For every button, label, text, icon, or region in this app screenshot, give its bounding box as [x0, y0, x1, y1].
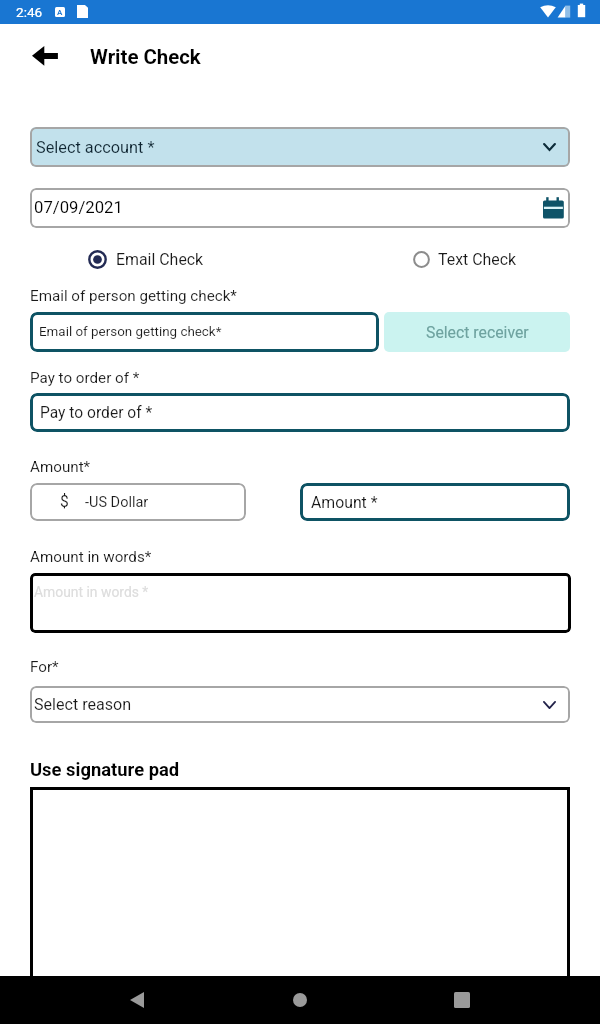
staticText: Amount* [30, 458, 91, 476]
button[interactable]: Text Check [399, 245, 529, 273]
staticText: Pay to order of * [30, 369, 140, 387]
staticText: Amount in words* [30, 548, 152, 566]
staticText: Write Check [90, 45, 201, 69]
staticText: Email Check [116, 250, 204, 269]
button[interactable]: Select account * [30, 127, 570, 167]
button[interactable]: Amount in words * [30, 573, 571, 633]
staticText: Pay to order of * [40, 404, 153, 422]
staticText: 2:46 [16, 4, 43, 20]
staticText: 07/09/2021 [34, 198, 123, 218]
staticText: For* [30, 658, 59, 676]
button[interactable]: Pay to order of * [30, 393, 570, 432]
button[interactable]: Back [107, 976, 167, 1024]
button[interactable]: Select reason [30, 686, 570, 723]
staticText: Select reason [34, 695, 132, 714]
staticText: $ [60, 493, 69, 511]
button[interactable]: Amount * [300, 483, 570, 521]
staticText: Amount in words * [34, 584, 149, 600]
button[interactable]: Select receiver [384, 312, 570, 352]
staticText: Use signature pad [30, 759, 180, 781]
staticText: Email of person getting check* [30, 287, 237, 305]
button[interactable] [30, 787, 570, 1002]
staticText: Email of person getting check* [39, 324, 222, 340]
button[interactable]: $ [30, 483, 246, 521]
staticText: -US Dollar [85, 494, 149, 511]
staticText: Amount * [311, 493, 378, 512]
button[interactable]: Back [21, 32, 69, 80]
button[interactable]: Email of person getting check* [30, 312, 379, 352]
button[interactable]: Home [270, 976, 330, 1024]
button[interactable]: 07/09/2021 [30, 188, 570, 228]
staticText: Select account * [36, 138, 155, 157]
button[interactable]: Recent apps [432, 976, 492, 1024]
staticText: Text Check [438, 250, 517, 269]
button[interactable]: Email Check [74, 245, 219, 273]
staticText: Select receiver [426, 323, 529, 342]
staticText: A [57, 8, 63, 17]
